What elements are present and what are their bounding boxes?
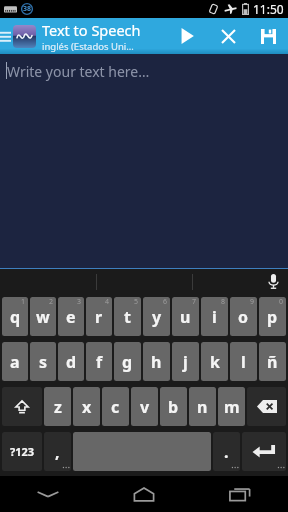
staticText: Write your text here… [7,62,150,81]
staticText: 5 [134,297,139,307]
button[interactable]: ?123 [2,432,42,471]
button[interactable]: l [230,342,257,381]
button[interactable]: m [218,387,245,426]
staticText: a [10,351,20,373]
button[interactable]: 2 [30,297,56,336]
button[interactable]: Write your text here… [0,54,288,268]
staticText: 4 [105,297,110,307]
staticText: w [36,306,50,328]
button[interactable]: Enter [242,432,286,471]
staticText: i [212,306,217,328]
button[interactable]: f [86,342,112,381]
button[interactable]: 0 [259,297,286,336]
staticText: . [224,441,229,463]
button[interactable]: g [114,342,141,381]
button[interactable]: Backspace [247,387,286,426]
staticText: 8 [221,297,226,307]
staticText: g [122,351,133,373]
button[interactable]: a [2,342,28,381]
button[interactable]: Clear [208,18,248,54]
staticText: o [238,306,249,328]
staticText: l [241,351,246,373]
button[interactable]: Play [166,18,208,54]
button[interactable]: x [73,387,100,426]
button[interactable]: k [201,342,228,381]
button[interactable]: , [44,432,71,471]
staticText: u [180,306,191,328]
staticText: t [124,306,131,328]
staticText: b [168,396,179,418]
staticText: inglés (Estados Uni… [42,40,134,53]
button[interactable]: Voice input [258,269,288,294]
button[interactable]: Save [248,18,288,54]
button[interactable]: 1 [2,297,28,336]
staticText: r [95,306,103,328]
staticText: q [10,306,21,328]
staticText: k [210,351,220,373]
staticText: 6 [163,297,168,307]
button[interactable]: Shift [2,387,42,426]
staticText: s [39,351,48,373]
staticText: m [224,396,240,418]
staticText: v [140,396,150,418]
button[interactable]: h [143,342,170,381]
staticText: 7 [192,297,197,307]
staticText: 1 [21,297,26,307]
button[interactable]: z [44,387,71,426]
staticText: ?123 [10,444,35,459]
button[interactable] [193,269,288,294]
button[interactable]: 9 [230,297,257,336]
staticText: z [54,396,62,418]
button[interactable]: s [30,342,56,381]
button[interactable]: 8 [201,297,228,336]
button[interactable]: . [213,432,240,471]
button[interactable]: d [58,342,84,381]
staticText: 2 [49,297,54,307]
staticText: Text to Speech [42,20,141,40]
button[interactable]: 4 [86,297,112,336]
button[interactable]: Hide keyboard [0,476,96,512]
button[interactable]: 7 [172,297,199,336]
button[interactable]: 5 [114,297,141,336]
staticText: d [66,351,77,373]
staticText: 11:50 [253,1,284,17]
staticText: f [96,351,103,373]
staticText: ñ [267,351,278,373]
button[interactable]: b [160,387,187,426]
button[interactable]: c [102,387,129,426]
staticText: x [82,396,92,418]
button[interactable]: 3 [58,297,84,336]
button[interactable]: Recent apps [192,476,288,512]
staticText: 3 [77,297,82,307]
staticText: 38 [23,4,32,14]
button[interactable]: Navigation drawer [0,18,12,54]
staticText: n [197,396,208,418]
button[interactable]: ñ [259,342,286,381]
button[interactable]: j [172,342,199,381]
staticText: h [151,351,162,373]
staticText: y [152,306,162,328]
button[interactable]: v [131,387,158,426]
button[interactable]: 6 [143,297,170,336]
staticText: , [55,441,60,463]
button[interactable]: Home [96,476,192,512]
button[interactable]: n [189,387,216,426]
staticText: 0 [279,297,284,307]
staticText: e [66,306,76,328]
staticText: p [267,306,278,328]
staticText: j [183,351,188,373]
staticText: 9 [250,297,255,307]
staticText: c [111,396,120,418]
